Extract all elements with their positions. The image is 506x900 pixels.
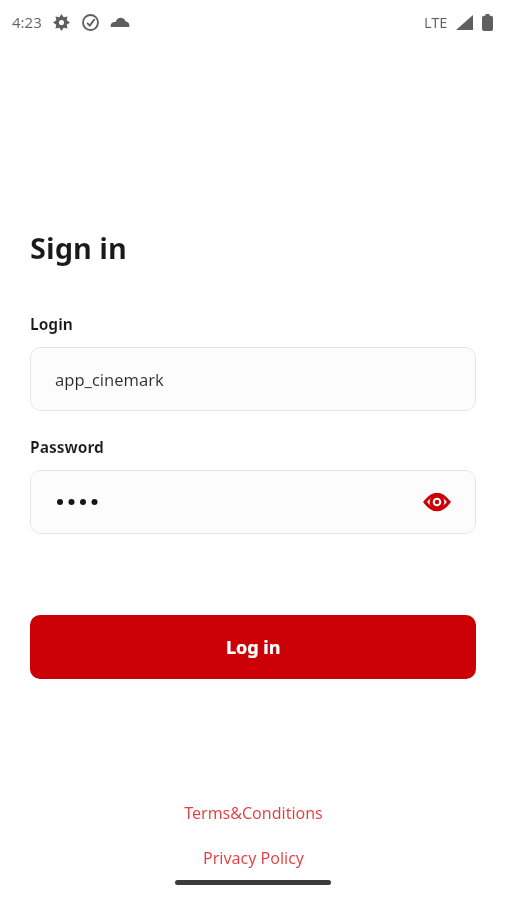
staticText: 4:23 (12, 12, 42, 32)
staticText: Log in (226, 635, 281, 660)
button[interactable]: Show password (420, 485, 454, 519)
button[interactable]: app_cinemark (30, 347, 476, 411)
staticText: LTE (424, 12, 448, 32)
staticText: app_cinemark (55, 368, 164, 390)
button[interactable]: Privacy Policy (195, 844, 312, 872)
staticText: Terms&Conditions (184, 802, 323, 824)
staticText: Login (30, 313, 73, 334)
button[interactable]: Terms&Conditions (176, 799, 331, 827)
button[interactable]: Show password (30, 470, 476, 534)
staticText: Password (30, 436, 104, 457)
button[interactable]: Log in (30, 615, 476, 679)
staticText: Privacy Policy (203, 847, 304, 869)
staticText: Sign in (30, 228, 127, 267)
